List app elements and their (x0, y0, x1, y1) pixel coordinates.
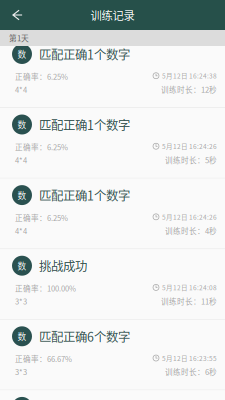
staticText: 正确率：6.25% (15, 71, 68, 82)
staticText: 5月12日 16:24:08 (162, 283, 217, 292)
button[interactable]: 数 (0, 390, 225, 400)
staticText: 3*3 (15, 296, 27, 307)
staticText: 5月12日 16:24:38 (162, 71, 217, 80)
button[interactable]: 数 (0, 249, 225, 320)
staticText: 3*3 (15, 366, 27, 377)
staticText: 数 (17, 189, 26, 201)
button[interactable]: 数 (0, 108, 225, 179)
staticText: 数 (17, 259, 26, 272)
staticText: 训练时长：12秒 (161, 84, 217, 95)
button[interactable]: 数 (0, 179, 225, 249)
staticText: 4*4 (15, 84, 27, 95)
staticText: 挑战成功 (39, 257, 87, 275)
staticText: 训练时长：6秒 (165, 366, 217, 377)
staticText: 训练记录 (90, 7, 134, 23)
staticText: 第1天 (9, 32, 29, 44)
staticText: 匹配正确1个数字 (39, 115, 130, 133)
staticText: 训练时长：11秒 (161, 296, 217, 307)
button[interactable]: Back (2, 0, 32, 30)
staticText: 数 (17, 48, 26, 60)
staticText: 匹配正确6个数字 (39, 327, 130, 345)
staticText: 正确率：100.00% (15, 283, 76, 294)
staticText: 5月12日 16:23:55 (162, 353, 217, 363)
button[interactable]: 数 (0, 46, 225, 108)
staticText: 5月12日 16:24:26 (162, 141, 217, 151)
staticText: 数 (17, 118, 26, 131)
staticText: 匹配正确1个数字 (39, 186, 130, 204)
staticText: 数 (17, 330, 26, 342)
staticText: 正确率：6.25% (15, 212, 68, 223)
staticText: 正确率：66.67% (15, 353, 72, 364)
staticText: 正确率：6.25% (15, 141, 68, 152)
button[interactable]: 数 (0, 320, 225, 390)
staticText: 训练时长：4秒 (165, 225, 217, 236)
staticText: 4*4 (15, 225, 27, 236)
staticText: 匹配正确1个数字 (39, 45, 130, 63)
staticText: 4*4 (15, 154, 27, 165)
staticText: 训练时长：5秒 (165, 154, 217, 165)
staticText: 5月12日 16:24:26 (162, 212, 217, 222)
